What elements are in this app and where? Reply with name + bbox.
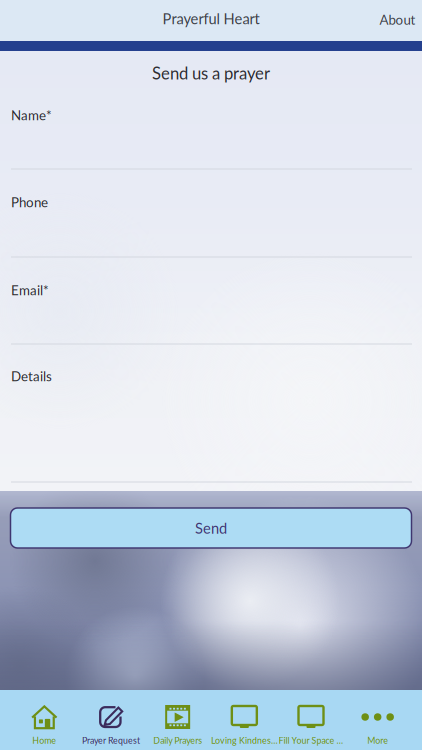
staticText: Fill Your Space … bbox=[278, 735, 343, 746]
button[interactable]: Home bbox=[11, 690, 78, 750]
button[interactable]: Fill Your Space … bbox=[278, 690, 344, 750]
staticText: Send bbox=[195, 519, 227, 537]
staticText: Phone bbox=[11, 194, 48, 210]
staticText: Loving Kindnes… bbox=[211, 735, 278, 746]
staticText: Daily Prayers bbox=[153, 735, 202, 746]
button[interactable]: Daily Prayers bbox=[144, 690, 211, 750]
button[interactable]: About bbox=[349, 0, 422, 40]
button[interactable]: Prayer Request bbox=[78, 690, 144, 750]
staticText: More bbox=[367, 735, 388, 746]
button[interactable]: Loving Kindnes… bbox=[211, 690, 278, 750]
staticText: Details bbox=[11, 368, 52, 384]
staticText: Prayer Request bbox=[82, 735, 140, 746]
staticText: Name* bbox=[11, 107, 52, 123]
staticText: About bbox=[379, 11, 415, 27]
staticText: Email* bbox=[11, 282, 49, 298]
staticText: Home bbox=[32, 735, 56, 746]
button[interactable]: More bbox=[344, 690, 411, 750]
staticText: Prayerful Heart bbox=[162, 10, 259, 27]
button[interactable]: Send bbox=[10, 508, 411, 548]
staticText: Send us a prayer bbox=[152, 63, 270, 83]
